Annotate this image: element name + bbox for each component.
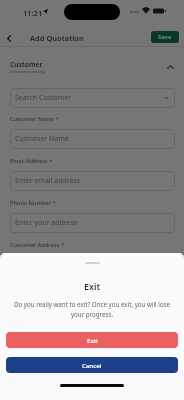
staticText: Exit (84, 280, 101, 292)
staticText: Customer Address (10, 241, 60, 249)
button[interactable]: Enter email address (10, 171, 175, 191)
staticText: Phone Number (10, 199, 51, 207)
button[interactable]: Enter your address (10, 213, 175, 233)
staticText: Customer Name (15, 134, 69, 144)
staticText: Cancel (82, 361, 102, 369)
button[interactable]: Cancel (6, 357, 178, 373)
button[interactable]: Back (2, 31, 16, 45)
button[interactable]: Exit (6, 332, 178, 348)
staticText: * (51, 199, 56, 207)
staticText: Exit (87, 336, 98, 344)
staticText: Email Address (10, 157, 48, 165)
staticText: 11:21 (23, 8, 43, 18)
staticText: Information missing (10, 69, 46, 74)
staticText: Save (158, 33, 172, 41)
staticText: * (48, 157, 53, 165)
button[interactable]: Customer Name (10, 129, 175, 149)
staticText: Customer Name (10, 115, 54, 123)
staticText: Enter your address (15, 218, 78, 228)
staticText: Customer (10, 60, 43, 69)
button[interactable]: Collapse section (163, 60, 177, 74)
staticText: Add Quotation (30, 33, 84, 43)
button[interactable]: Save (151, 31, 179, 43)
button[interactable]: Search Customer (10, 88, 175, 108)
staticText: * (60, 241, 65, 249)
staticText: * (54, 115, 59, 123)
staticText: Do you really want to exit? Once you exi… (10, 300, 174, 319)
staticText: Enter email address (15, 176, 81, 186)
staticText: Search Customer (15, 93, 72, 103)
